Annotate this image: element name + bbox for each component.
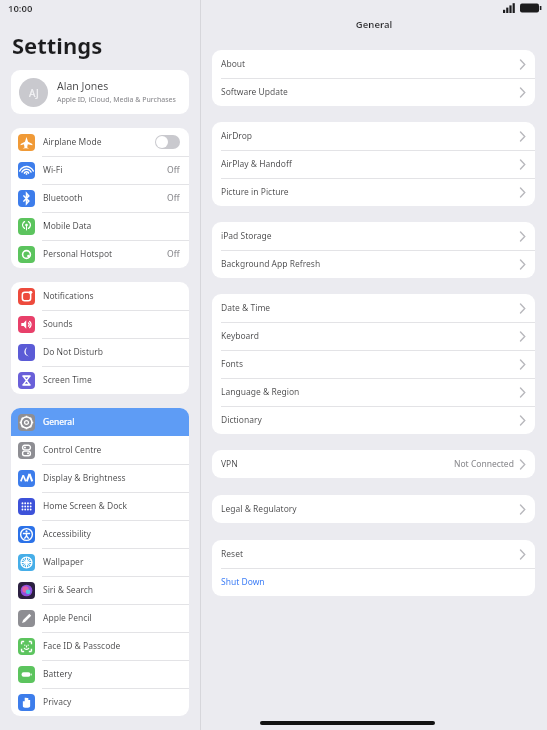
button[interactable]: Privacy [11, 688, 189, 716]
staticText: Software Update [221, 86, 520, 98]
button[interactable]: Face ID & Passcode [11, 632, 189, 660]
staticText: Fonts [221, 358, 520, 370]
staticText: Background App Refresh [221, 258, 520, 270]
button[interactable]: Keyboard [212, 322, 535, 350]
button[interactable]: Software Update [212, 78, 535, 106]
staticText: Mobile Data [43, 220, 180, 232]
button[interactable]: Do Not Disturb [11, 338, 189, 366]
staticText: Date & Time [221, 302, 520, 314]
staticText: Privacy [43, 696, 180, 708]
button[interactable]: Control Centre [11, 436, 189, 464]
button[interactable]: Legal & Regulatory [212, 495, 535, 523]
button[interactable]: iPad Storage [212, 222, 535, 250]
button[interactable]: Apple Pencil [11, 604, 189, 632]
button[interactable]: Airplane Mode toggle [155, 135, 180, 149]
staticText: Control Centre [43, 444, 180, 456]
button[interactable]: Accessibility [11, 520, 189, 548]
staticText: Reset [221, 548, 520, 560]
button[interactable]: Background App Refresh [212, 250, 535, 278]
staticText: 10:00 [8, 2, 33, 15]
button[interactable]: Airplane Mode [11, 128, 189, 156]
staticText: Battery [43, 668, 180, 680]
staticText: Apple Pencil [43, 612, 180, 624]
staticText: Notifications [43, 290, 180, 302]
button[interactable]: VPN [212, 450, 535, 478]
staticText: AirPlay & Handoff [221, 158, 520, 170]
staticText: Siri & Search [43, 584, 180, 596]
staticText: Do Not Disturb [43, 346, 180, 358]
button[interactable]: Fonts [212, 350, 535, 378]
staticText: Off [167, 164, 180, 176]
staticText: Sounds [43, 318, 180, 330]
staticText: General [43, 416, 180, 428]
staticText: Airplane Mode [43, 136, 155, 148]
button[interactable]: Bluetooth [11, 184, 189, 212]
staticText: About [221, 58, 520, 70]
button[interactable]: Siri & Search [11, 576, 189, 604]
staticText: Alan Jones [57, 79, 109, 93]
staticText: AJ [29, 86, 39, 100]
button[interactable]: Mobile Data [11, 212, 189, 240]
staticText: Legal & Regulatory [221, 503, 520, 515]
staticText: Personal Hotspot [43, 248, 167, 260]
staticText: Wallpaper [43, 556, 180, 568]
button[interactable]: AirPlay & Handoff [212, 150, 535, 178]
staticText: Shut Down [221, 576, 525, 588]
button[interactable]: Screen Time [11, 366, 189, 394]
staticText: Settings [12, 30, 103, 60]
button[interactable]: Picture in Picture [212, 178, 535, 206]
staticText: Off [167, 192, 180, 204]
staticText: AirDrop [221, 130, 520, 142]
staticText: Picture in Picture [221, 186, 520, 198]
button[interactable]: Reset [212, 540, 535, 568]
button[interactable]: Shut Down [212, 568, 535, 596]
button[interactable]: General [11, 408, 189, 436]
button[interactable]: Sounds [11, 310, 189, 338]
staticText: Screen Time [43, 374, 180, 386]
staticText: General [201, 18, 547, 31]
staticText: Dictionary [221, 414, 520, 426]
staticText: Face ID & Passcode [43, 640, 180, 652]
button[interactable]: Wi-Fi [11, 156, 189, 184]
button[interactable]: Wallpaper [11, 548, 189, 576]
staticText: iPad Storage [221, 230, 520, 242]
button[interactable]: Notifications [11, 282, 189, 310]
button[interactable]: AirDrop [212, 122, 535, 150]
staticText: Apple ID, iCloud, Media & Purchases [57, 95, 176, 105]
staticText: Off [167, 248, 180, 260]
button[interactable]: Home Screen & Dock [11, 492, 189, 520]
staticText: Display & Brightness [43, 472, 180, 484]
button[interactable]: AJ [11, 70, 189, 114]
button[interactable]: Dictionary [212, 406, 535, 434]
staticText: Language & Region [221, 386, 520, 398]
button[interactable]: Battery [11, 660, 189, 688]
button[interactable]: Language & Region [212, 378, 535, 406]
button[interactable]: Personal Hotspot [11, 240, 189, 268]
staticText: Not Connected [454, 458, 514, 470]
button[interactable]: About [212, 50, 535, 78]
button[interactable]: Date & Time [212, 294, 535, 322]
staticText: Home Screen & Dock [43, 500, 180, 512]
staticText: Accessibility [43, 528, 180, 540]
staticText: Wi-Fi [43, 164, 167, 176]
staticText: Keyboard [221, 330, 520, 342]
staticText: VPN [221, 458, 454, 470]
staticText: Bluetooth [43, 192, 167, 204]
button[interactable]: Display & Brightness [11, 464, 189, 492]
